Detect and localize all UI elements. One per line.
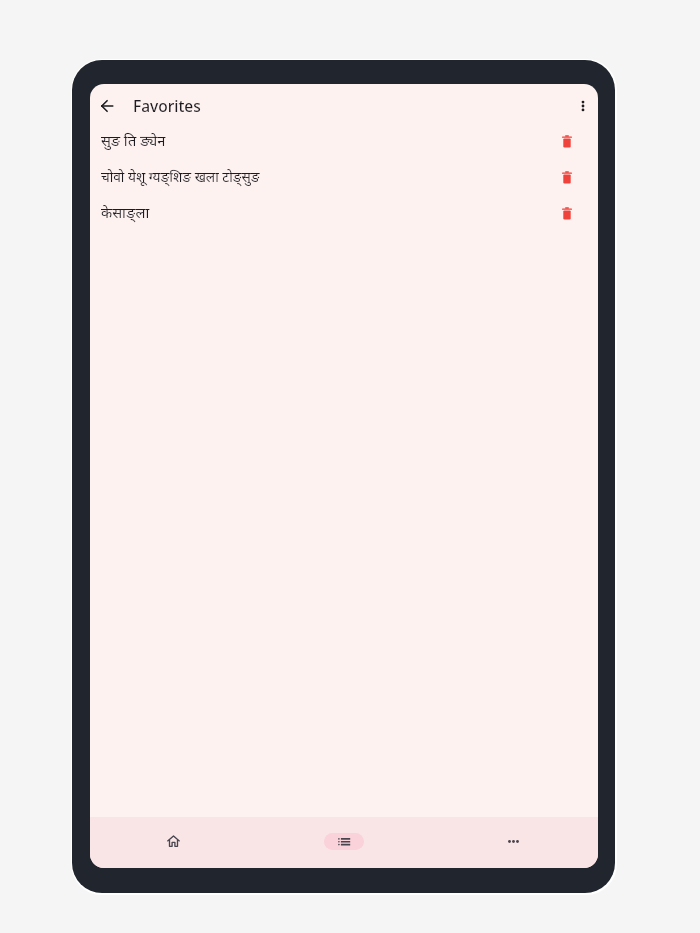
button[interactable] [554, 128, 580, 154]
button[interactable] [90, 89, 124, 123]
button[interactable] [568, 91, 598, 121]
button[interactable]: चोवो येशू ग्यङ्शिङ खला टोङ्सुङ [90, 159, 598, 195]
staticText: चोवो येशू ग्यङ्शिङ खला टोङ्सुङ [101, 167, 260, 186]
staticText: सुङ ति ङ्येन [101, 130, 166, 150]
button[interactable] [90, 817, 260, 865]
button[interactable] [260, 817, 429, 865]
staticText: Favorites [133, 95, 201, 116]
button[interactable] [554, 164, 580, 190]
staticText: केसाङ्ला [101, 202, 150, 222]
button[interactable] [429, 817, 598, 865]
button[interactable] [554, 200, 580, 226]
button[interactable]: केसाङ्ला [90, 195, 598, 231]
button[interactable]: सुङ ति ङ्येन [90, 123, 598, 159]
